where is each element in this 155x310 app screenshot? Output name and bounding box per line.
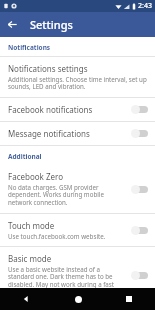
staticText: Additional xyxy=(8,152,42,161)
staticText: Message notifications xyxy=(8,128,90,139)
button[interactable]: Toggle xyxy=(131,225,149,236)
button[interactable]: Recents xyxy=(116,288,142,310)
button[interactable]: Back xyxy=(13,288,39,310)
staticText: Additional settings. Choose time interva… xyxy=(8,75,149,91)
button[interactable]: Facebook Zero xyxy=(0,165,155,213)
staticText: 2:43 xyxy=(138,1,152,11)
staticText: Notifications xyxy=(8,43,51,52)
staticText: Use touch.facebook.com website. xyxy=(8,232,106,240)
button[interactable]: Touch mode xyxy=(0,214,155,246)
staticText: Facebook Zero xyxy=(8,171,64,182)
button[interactable]: Toggle xyxy=(131,104,149,115)
button[interactable]: Facebook notifications xyxy=(0,98,155,121)
staticText: Facebook notifications xyxy=(8,104,93,115)
button[interactable]: Toggle xyxy=(131,270,149,281)
staticText: Touch mode xyxy=(8,220,55,231)
staticText: Notifications settings xyxy=(8,63,88,74)
button[interactable]: Basic mode xyxy=(0,247,155,288)
staticText: No data charges. GSM provider dependent.… xyxy=(8,183,125,207)
button[interactable]: Notifications settings xyxy=(0,57,155,97)
button[interactable]: Toggle xyxy=(131,184,149,195)
staticText: Basic mode xyxy=(8,253,52,264)
staticText: Settings xyxy=(30,17,73,32)
button[interactable]: Back xyxy=(0,12,25,37)
staticText: Use a basic website instead of a standar… xyxy=(8,265,125,288)
button[interactable]: Toggle xyxy=(131,128,149,139)
button[interactable]: Home xyxy=(65,288,91,310)
button[interactable]: Message notifications xyxy=(0,122,155,145)
